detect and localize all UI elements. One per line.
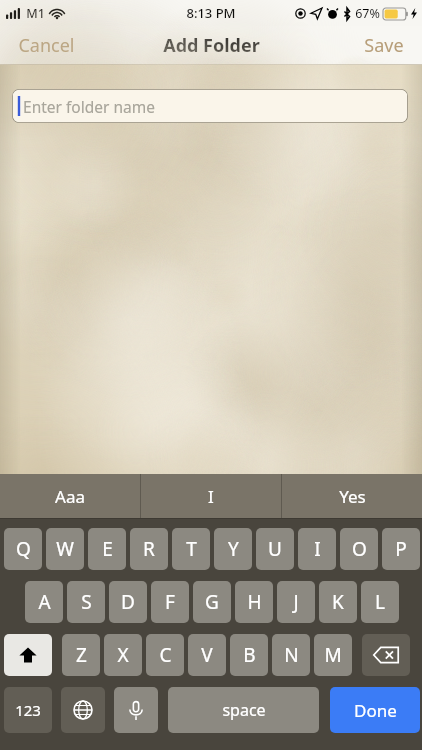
staticText: M	[324, 642, 342, 668]
staticText: Enter folder name	[23, 96, 155, 117]
button[interactable]: Backspace	[362, 634, 410, 676]
staticText: U	[268, 536, 282, 562]
staticText: O	[352, 536, 367, 562]
staticText: Save	[364, 33, 404, 57]
button[interactable]: Change keyboard	[61, 687, 105, 733]
staticText: Aaa	[55, 485, 85, 508]
button[interactable]: F	[151, 581, 189, 623]
button[interactable]: R	[130, 528, 168, 570]
staticText: E	[102, 536, 113, 562]
staticText: 123	[15, 700, 41, 720]
button[interactable]: H	[235, 581, 273, 623]
button[interactable]: I	[141, 474, 281, 518]
button[interactable]: C	[146, 634, 184, 676]
button[interactable]: B	[230, 634, 268, 676]
button[interactable]: Yes	[282, 474, 422, 518]
staticText: Add Folder	[163, 33, 260, 58]
button[interactable]: Done	[330, 687, 420, 733]
button[interactable]: Save	[346, 26, 422, 64]
button[interactable]: N	[272, 634, 310, 676]
staticText: P	[395, 536, 407, 562]
button[interactable]: M	[314, 634, 352, 676]
staticText: S	[81, 589, 92, 615]
staticText: K	[332, 589, 344, 615]
button[interactable]: Q	[4, 528, 42, 570]
staticText: Z	[76, 642, 87, 668]
button[interactable]: I	[298, 528, 336, 570]
button[interactable]: T	[172, 528, 210, 570]
staticText: I	[314, 536, 321, 562]
button[interactable]: U	[256, 528, 294, 570]
button[interactable]: Enter folder name	[12, 89, 408, 123]
staticText: M1	[26, 5, 45, 22]
staticText: F	[165, 589, 175, 615]
staticText: Done	[354, 699, 397, 722]
staticText: C	[159, 642, 172, 668]
staticText: A	[38, 589, 51, 615]
button[interactable]: W	[46, 528, 84, 570]
button[interactable]: E	[88, 528, 126, 570]
button[interactable]: D	[109, 581, 147, 623]
staticText: B	[243, 642, 256, 668]
button[interactable]: Z	[62, 634, 100, 676]
staticText: W	[56, 536, 74, 562]
staticText: J	[293, 589, 299, 615]
staticText: N	[284, 642, 299, 668]
button[interactable]: X	[104, 634, 142, 676]
button[interactable]: Shift	[4, 634, 52, 676]
button[interactable]: K	[319, 581, 357, 623]
staticText: 67%	[355, 5, 380, 22]
staticText: X	[117, 642, 129, 668]
button[interactable]: space	[168, 687, 319, 733]
staticText: G	[205, 589, 219, 615]
button[interactable]: G	[193, 581, 231, 623]
staticText: I	[208, 485, 214, 508]
staticText: R	[143, 536, 155, 562]
button[interactable]: P	[382, 528, 420, 570]
button[interactable]: Cancel	[0, 26, 93, 64]
staticText: T	[186, 536, 197, 562]
staticText: D	[121, 589, 135, 615]
button[interactable]: Aaa	[0, 474, 140, 518]
staticText: Yes	[339, 485, 366, 508]
staticText: L	[375, 589, 385, 615]
button[interactable]: S	[67, 581, 105, 623]
button[interactable]: Y	[214, 528, 252, 570]
button[interactable]: Dictation	[114, 687, 158, 733]
button[interactable]: A	[25, 581, 63, 623]
button[interactable]: J	[277, 581, 315, 623]
staticText: Cancel	[18, 33, 75, 57]
staticText: H	[247, 589, 262, 615]
button[interactable]: L	[361, 581, 399, 623]
staticText: Y	[228, 536, 239, 562]
button[interactable]: O	[340, 528, 378, 570]
button[interactable]: 123	[4, 687, 52, 733]
staticText: Q	[16, 536, 31, 562]
staticText: V	[201, 642, 213, 668]
staticText: 8:13 PM	[186, 4, 236, 22]
staticText: space	[222, 699, 266, 721]
button[interactable]: V	[188, 634, 226, 676]
